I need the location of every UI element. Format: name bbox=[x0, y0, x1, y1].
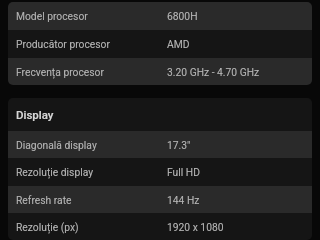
button[interactable]: Frecvența procesor bbox=[8, 58, 312, 85]
staticText: 17.3" bbox=[167, 139, 191, 151]
staticText: Model procesor bbox=[16, 10, 167, 22]
staticText: Frecvența procesor bbox=[16, 66, 167, 78]
staticText: 3.20 GHz - 4.70 GHz bbox=[167, 66, 260, 78]
staticText: 1920 x 1080 bbox=[167, 221, 224, 233]
button[interactable]: Diagonală display bbox=[8, 131, 312, 158]
button[interactable]: Display bbox=[8, 98, 312, 131]
staticText: Rezoluție (px) bbox=[16, 221, 167, 233]
button[interactable]: Producător procesor bbox=[8, 30, 312, 58]
button[interactable]: Rezoluție (px) bbox=[8, 213, 312, 240]
staticText: AMD bbox=[167, 38, 190, 50]
staticText: Diagonală display bbox=[16, 139, 167, 151]
staticText: Rezoluție display bbox=[16, 166, 167, 178]
staticText: Refresh rate bbox=[16, 194, 167, 206]
button[interactable]: Model procesor bbox=[8, 2, 312, 30]
staticText: 144 Hz bbox=[167, 194, 200, 206]
button[interactable]: Refresh rate bbox=[8, 186, 312, 213]
staticText: Display bbox=[16, 108, 54, 121]
staticText: 6800H bbox=[167, 10, 198, 22]
staticText: Full HD bbox=[167, 166, 200, 178]
button[interactable]: Rezoluție display bbox=[8, 158, 312, 186]
staticText: Producător procesor bbox=[16, 38, 167, 50]
